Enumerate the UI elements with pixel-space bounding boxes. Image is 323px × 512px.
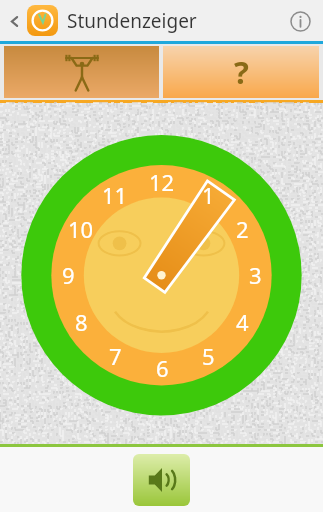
staticText: 6 [156, 353, 169, 383]
staticText: Stundenzeiger [67, 8, 197, 34]
button[interactable]: Info [286, 7, 314, 35]
staticText: 8 [75, 307, 88, 337]
staticText: 12 [149, 167, 175, 197]
staticText: 5 [202, 341, 215, 371]
button[interactable]: Help tab [163, 46, 319, 98]
staticText: ? [234, 51, 249, 93]
staticText: 11 [102, 180, 128, 210]
staticText: 3 [249, 260, 262, 290]
staticText: 2 [236, 214, 249, 244]
staticText: 10 [68, 214, 94, 244]
button[interactable]: Back [3, 10, 25, 32]
staticText: 9 [62, 260, 75, 290]
button[interactable]: Exercise tab [4, 46, 159, 98]
staticText: 4 [236, 307, 249, 337]
staticText: 1 [202, 180, 215, 210]
button[interactable]: Speak time [133, 454, 190, 506]
staticText: 7 [109, 341, 122, 371]
button[interactable]: Clock face [0, 103, 323, 444]
